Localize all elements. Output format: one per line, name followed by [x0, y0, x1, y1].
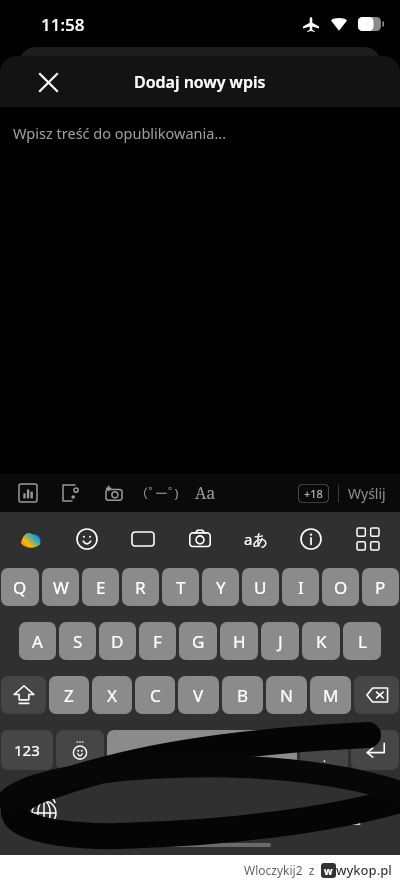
staticText: W: [53, 576, 69, 599]
button[interactable]: I: [282, 568, 319, 606]
staticText: M: [323, 684, 339, 707]
button[interactable]: A: [19, 622, 56, 660]
button[interactable]: W: [42, 568, 79, 606]
button[interactable]: P: [362, 568, 399, 606]
button[interactable]: Emoji: [56, 730, 104, 770]
staticText: Microsoft SwiftKey: [154, 743, 250, 758]
staticText: L: [358, 630, 367, 653]
button[interactable]: L: [343, 622, 381, 660]
staticText: Y: [216, 576, 226, 599]
button[interactable]: M: [310, 676, 351, 714]
staticText: wykop.pl: [336, 861, 392, 879]
staticText: D: [111, 630, 124, 653]
button[interactable]: Aparat: [102, 481, 126, 505]
button[interactable]: +18: [298, 484, 329, 503]
button[interactable]: R: [122, 568, 159, 606]
button[interactable]: Shift: [1, 676, 46, 714]
button[interactable]: D: [99, 622, 136, 660]
button[interactable]: N: [266, 676, 307, 714]
button[interactable]: (ﾟーﾟ): [142, 481, 179, 505]
button[interactable]: aあ: [242, 525, 270, 553]
staticText: R: [135, 576, 146, 599]
button[interactable]: Y: [202, 568, 239, 606]
staticText: J: [278, 630, 283, 653]
staticText: F: [153, 630, 162, 653]
button[interactable]: Obraz: [59, 481, 83, 505]
staticText: w: [324, 864, 333, 878]
button[interactable]: E: [82, 568, 119, 606]
staticText: Wpisz treść do opublikowania...: [13, 123, 227, 143]
staticText: N: [280, 684, 293, 707]
button[interactable]: Aa: [195, 481, 216, 505]
button[interactable]: J: [261, 622, 299, 660]
button[interactable]: Backspace: [354, 676, 399, 714]
staticText: K: [316, 630, 327, 653]
button[interactable]: Aparat: [185, 524, 215, 554]
staticText: Aa: [195, 482, 216, 504]
button[interactable]: S: [59, 622, 96, 660]
staticText: Z: [64, 684, 74, 707]
button[interactable]: Zmień język: [28, 797, 60, 829]
button[interactable]: T: [162, 568, 199, 606]
button[interactable]: GIF: [128, 524, 158, 554]
staticText: G: [192, 630, 205, 653]
button[interactable]: C: [135, 676, 175, 714]
staticText: B: [237, 684, 249, 707]
staticText: 123: [14, 740, 40, 760]
staticText: S: [73, 630, 83, 653]
staticText: P: [375, 576, 386, 599]
button[interactable]: X: [92, 676, 132, 714]
button[interactable]: Emoji: [72, 524, 102, 554]
button[interactable]: V: [178, 676, 219, 714]
staticText: .: [323, 750, 326, 765]
button[interactable]: Microsoft SwiftKey: [107, 730, 297, 770]
staticText: Q: [13, 576, 27, 599]
staticText: V: [193, 684, 204, 707]
button[interactable]: Copilot: [17, 525, 45, 553]
staticText: (ﾟーﾟ): [142, 484, 179, 502]
staticText: Wloczykij2 z: [244, 862, 321, 878]
button[interactable]: Q: [1, 568, 39, 606]
staticText: O: [334, 576, 348, 599]
button[interactable]: Ankieta: [16, 481, 40, 505]
button[interactable]: Informacje: [296, 524, 326, 554]
button[interactable]: H: [220, 622, 258, 660]
button[interactable]: Mikrofon: [338, 797, 370, 829]
staticText: aあ: [244, 529, 268, 549]
button[interactable]: Z: [49, 676, 89, 714]
button[interactable]: G: [179, 622, 217, 660]
staticText: U: [254, 576, 267, 599]
button[interactable]: U: [242, 568, 279, 606]
staticText: C: [150, 684, 161, 707]
staticText: E: [96, 576, 106, 599]
staticText: Wyślij: [348, 484, 386, 503]
staticText: A: [32, 630, 43, 653]
button[interactable]: 123: [1, 730, 53, 770]
button[interactable]: B: [222, 676, 263, 714]
staticText: T: [176, 576, 186, 599]
button[interactable]: Wyślij: [348, 484, 386, 503]
staticText: X: [107, 684, 117, 707]
button[interactable]: @#: [300, 730, 348, 770]
staticText: Dodaj nowy wpis: [134, 71, 266, 93]
staticText: 11:58: [41, 13, 85, 36]
button[interactable]: O: [322, 568, 359, 606]
button[interactable]: F: [139, 622, 176, 660]
button[interactable]: Więcej: [353, 524, 383, 554]
button[interactable]: Enter: [351, 730, 399, 770]
button[interactable]: Zamknij: [33, 67, 63, 97]
staticText: H: [233, 630, 246, 653]
staticText: I: [298, 576, 304, 599]
staticText: +18: [304, 486, 323, 501]
button[interactable]: K: [302, 622, 340, 660]
